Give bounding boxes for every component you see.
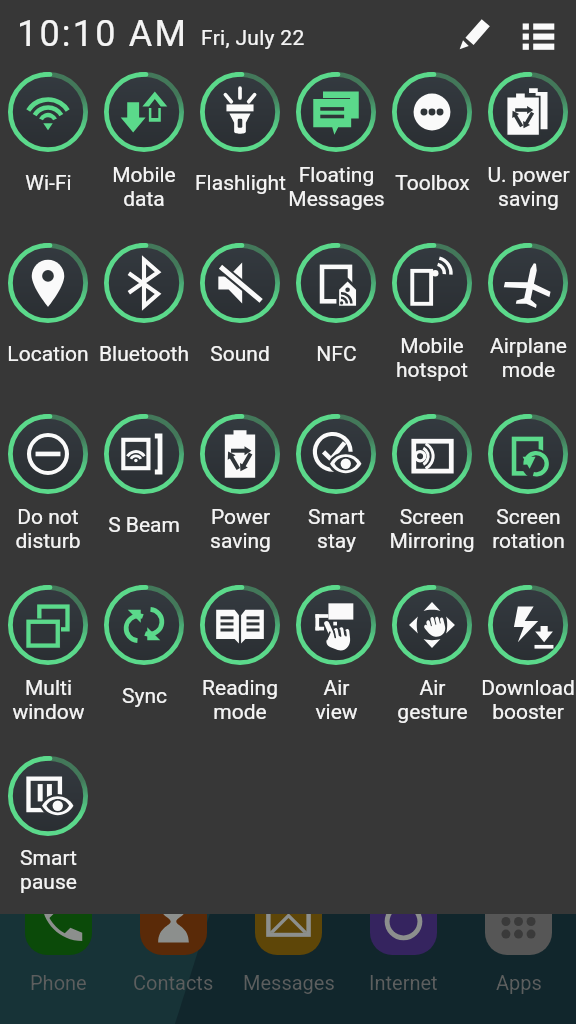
staticText: Screen rotation [492, 505, 565, 553]
button[interactable]: NFC [288, 233, 384, 404]
button[interactable]: Internet [346, 888, 461, 994]
staticText: Phone [30, 971, 87, 994]
staticText: Smart pause [20, 846, 77, 894]
button[interactable]: Smart pause [0, 746, 96, 914]
staticText: Fri, July 22 [201, 26, 305, 51]
button[interactable]: Reading mode [192, 575, 288, 746]
button[interactable]: Do not disturb [0, 404, 96, 575]
button[interactable]: Show as list [515, 11, 561, 57]
staticText: Reading mode [202, 676, 278, 724]
button[interactable]: Airplane mode [480, 233, 576, 404]
button[interactable]: U. power saving [480, 62, 576, 233]
button[interactable]: Floating Messages [288, 62, 384, 233]
button[interactable]: Sound [192, 233, 288, 404]
staticText: Internet [369, 971, 438, 994]
staticText: Mobile data [112, 163, 176, 211]
button[interactable]: Power saving [192, 404, 288, 575]
staticText: Airplane mode [490, 334, 567, 382]
staticText: Bluetooth [99, 342, 189, 367]
button[interactable]: Flashlight [192, 62, 288, 233]
button[interactable]: Mobile data [96, 62, 192, 233]
staticText: Do not disturb [15, 505, 81, 553]
staticText: Wi-Fi [25, 171, 72, 196]
staticText: NFC [316, 342, 357, 367]
button[interactable]: Smart stay [288, 404, 384, 575]
button[interactable]: Messages [231, 888, 346, 994]
button[interactable]: Screen rotation [480, 404, 576, 575]
button[interactable]: S Beam [96, 404, 192, 575]
button[interactable]: Contacts [116, 888, 231, 994]
staticText: Sync [122, 684, 167, 709]
button[interactable]: Apps [461, 888, 576, 994]
button[interactable]: Wi-Fi [0, 62, 96, 233]
staticText: Floating Messages [288, 163, 385, 211]
button[interactable]: Download booster [480, 575, 576, 746]
staticText: Smart stay [308, 505, 365, 553]
staticText: Mobile hotspot [396, 334, 468, 382]
button[interactable]: Phone [0, 888, 116, 994]
button[interactable]: Bluetooth [96, 233, 192, 404]
button[interactable]: Location [0, 233, 96, 404]
staticText: Toolbox [395, 171, 470, 196]
staticText: S Beam [108, 513, 180, 538]
staticText: Multi window [12, 676, 85, 724]
button[interactable]: Screen Mirroring [384, 404, 480, 575]
staticText: Download booster [481, 676, 575, 724]
staticText: Flashlight [195, 171, 286, 196]
button[interactable]: Edit quick settings [452, 11, 498, 57]
button[interactable]: Mobile hotspot [384, 233, 480, 404]
staticText: Air view [315, 676, 358, 724]
staticText: U. power saving [487, 163, 570, 211]
button[interactable]: Sync [96, 575, 192, 746]
staticText: 10:10 AM [17, 13, 189, 55]
staticText: Screen Mirroring [389, 505, 475, 553]
staticText: Apps [496, 971, 542, 994]
button[interactable]: Toolbox [384, 62, 480, 233]
button[interactable]: Air view [288, 575, 384, 746]
button[interactable]: Multi window [0, 575, 96, 746]
staticText: Air gesture [397, 676, 468, 724]
staticText: Sound [210, 342, 270, 367]
button[interactable]: Air gesture [384, 575, 480, 746]
staticText: Power saving [210, 505, 271, 553]
staticText: Contacts [133, 971, 214, 994]
staticText: Messages [243, 971, 335, 994]
staticText: Location [7, 342, 89, 367]
